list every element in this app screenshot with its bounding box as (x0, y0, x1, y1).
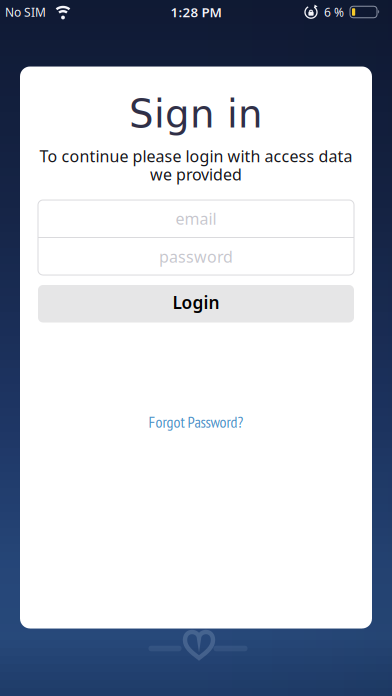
staticText: Login (172, 291, 219, 314)
staticText: No SIM (5, 4, 46, 20)
button[interactable]: Forgot Password? (148, 411, 243, 432)
staticText: Forgot Password? (148, 411, 243, 432)
staticText: To continue please login with access dat… (39, 145, 352, 167)
button[interactable]: password (38, 238, 354, 275)
staticText: we provided (150, 164, 242, 185)
staticText: 6 % (324, 4, 344, 20)
staticText: 1:28 PM (170, 3, 221, 21)
staticText: email (175, 208, 216, 229)
button[interactable]: email (38, 200, 354, 237)
button[interactable]: Login (38, 285, 354, 322)
staticText: password (159, 246, 233, 267)
staticText: Sign in (129, 91, 263, 136)
